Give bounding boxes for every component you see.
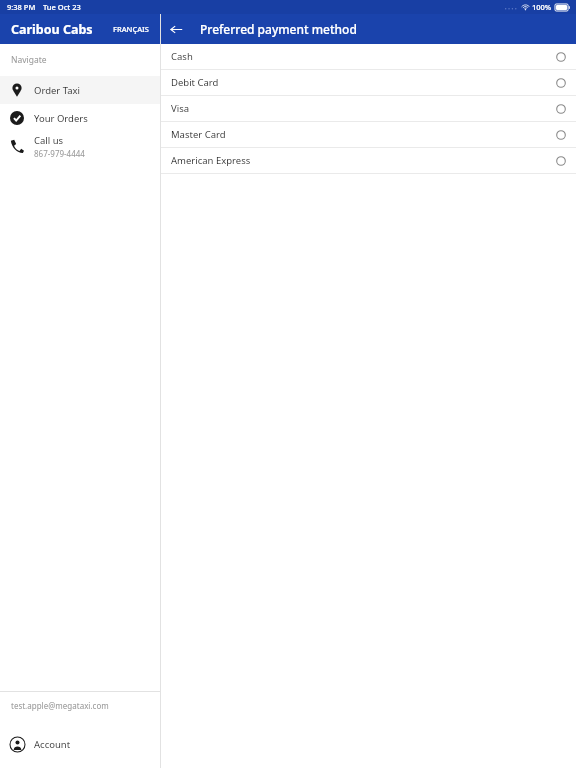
button[interactable]: American Express (161, 148, 576, 174)
staticText: Order Taxi (34, 84, 81, 97)
button[interactable]: FRANÇAIS (110, 21, 152, 37)
staticText: 100% (532, 2, 552, 12)
staticText: Visa (171, 102, 190, 115)
staticText: Account (34, 738, 71, 751)
staticText: Tue Oct 23 (43, 2, 81, 12)
button[interactable]: Call us (0, 132, 160, 160)
staticText: 9:38 PM (7, 2, 36, 12)
button[interactable]: Visa (161, 96, 576, 122)
button[interactable]: Account (0, 730, 160, 758)
button[interactable]: Order Taxi (0, 76, 160, 104)
button[interactable]: Master Card (161, 122, 576, 148)
staticText: Debit Card (171, 76, 219, 89)
staticText: Caribou Cabs (11, 21, 93, 38)
staticText: Cash (171, 50, 193, 63)
staticText: 867-979-4444 (34, 148, 85, 159)
staticText: Navigate (11, 54, 47, 66)
staticText: Preferred payment method (200, 21, 357, 37)
staticText: Call us (34, 134, 64, 147)
staticText: test.apple@megataxi.com (11, 700, 109, 711)
staticText: FRANÇAIS (113, 24, 149, 34)
staticText: Master Card (171, 128, 226, 141)
button[interactable]: Your Orders (0, 104, 160, 132)
staticText: Your Orders (34, 112, 88, 125)
button[interactable]: Debit Card (161, 70, 576, 96)
button[interactable]: Cash (161, 44, 576, 70)
button[interactable]: Back (161, 14, 191, 44)
staticText: American Express (171, 154, 251, 167)
